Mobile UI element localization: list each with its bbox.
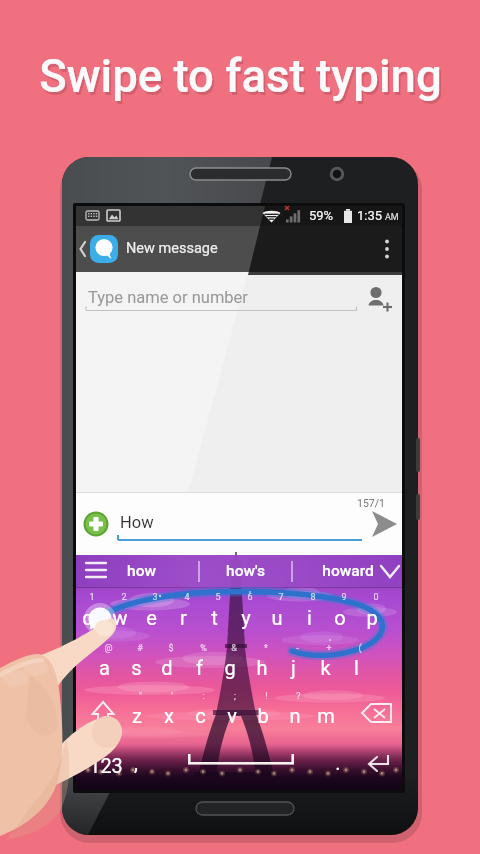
staticText: 5	[215, 592, 221, 603]
staticText: g	[224, 656, 236, 679]
staticText: a	[99, 656, 110, 679]
staticText: b	[257, 704, 269, 727]
staticText: d	[161, 656, 173, 679]
staticText: $	[168, 643, 174, 654]
staticText: &	[231, 643, 237, 654]
staticText: j	[291, 656, 296, 679]
staticText: l	[354, 656, 359, 679]
staticText: 59%	[309, 208, 334, 223]
staticText: Swipe to fast typing	[41, 53, 444, 106]
staticText: *	[264, 643, 268, 654]
staticText: 4	[184, 592, 190, 603]
staticText: 7	[278, 592, 284, 603]
staticText: 9	[341, 592, 347, 603]
staticText: k	[320, 656, 331, 679]
staticText: i	[307, 606, 312, 629]
staticText: 0	[373, 592, 379, 603]
staticText: @	[104, 643, 113, 654]
staticText: r	[180, 606, 187, 629]
staticText: Swipe to fast typing	[39, 50, 442, 103]
staticText: '	[171, 691, 173, 702]
staticText: s	[131, 656, 142, 679]
staticText: 157/1	[357, 497, 385, 509]
staticText: .	[335, 751, 341, 774]
staticText: f	[196, 656, 203, 679]
staticText: w	[112, 606, 128, 629]
staticText: u	[271, 606, 283, 629]
staticText: p	[366, 606, 378, 629]
staticText: y	[241, 606, 251, 629]
staticText: q	[82, 606, 94, 629]
staticText: How	[120, 513, 154, 532]
staticText: -	[296, 643, 299, 654]
staticText: !	[265, 691, 268, 702]
staticText: how	[127, 562, 156, 580]
staticText: ,	[134, 751, 138, 774]
staticText: New message	[126, 240, 218, 257]
staticText: 1:35	[357, 208, 383, 223]
staticText: z	[132, 704, 142, 727]
staticText: howard	[322, 562, 374, 580]
staticText: 1	[89, 592, 95, 603]
button[interactable]	[84, 280, 364, 312]
staticText: Type name or number	[88, 288, 248, 307]
staticText: m	[317, 704, 335, 727]
staticText: x	[164, 704, 174, 727]
staticText: how's	[226, 562, 265, 580]
staticText: #	[137, 643, 143, 654]
button[interactable]	[76, 226, 326, 272]
staticText: v	[227, 704, 237, 727]
staticText: 123	[89, 754, 123, 777]
staticText: %	[200, 643, 207, 654]
staticText: n	[289, 704, 301, 727]
staticText: t	[211, 606, 218, 629]
staticText: h	[256, 656, 268, 679]
staticText: 8	[310, 592, 316, 603]
staticText: "	[139, 691, 142, 702]
staticText: 3	[152, 592, 158, 603]
staticText: 6	[247, 592, 253, 603]
staticText: :	[202, 691, 205, 702]
staticText: o	[334, 606, 346, 629]
staticText: 2	[121, 592, 127, 603]
staticText: +	[326, 643, 332, 654]
staticText: ?	[296, 691, 301, 702]
staticText: ;	[234, 691, 236, 702]
staticText: e	[146, 606, 157, 629]
staticText: c	[195, 704, 206, 727]
staticText: (	[358, 643, 362, 654]
staticText: AM	[385, 212, 399, 223]
